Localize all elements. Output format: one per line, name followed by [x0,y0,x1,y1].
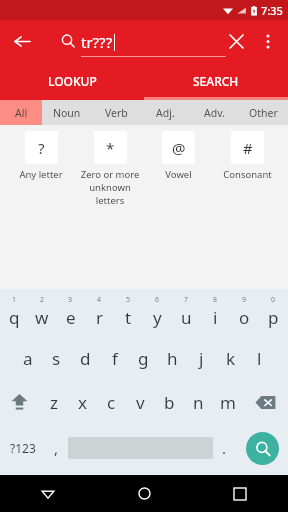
staticText: LOOKUP [48,73,97,89]
staticText: Consonant [223,168,272,181]
staticText: h [167,347,178,370]
staticText: f [112,347,118,370]
staticText: e [66,306,76,329]
staticText: Adv. [204,106,225,120]
button[interactable]: c [97,380,126,424]
button[interactable]: s [42,336,71,380]
staticText: j [199,347,204,370]
button[interactable]: More options [254,27,282,55]
staticText: 8 [213,295,218,305]
staticText: q [9,306,20,329]
staticText: i [213,306,218,329]
staticText: Zero or more unknown letters [77,168,143,207]
button[interactable]: # [214,131,280,181]
button[interactable]: b [155,380,184,424]
staticText: 1 [12,295,17,305]
staticText: , [54,438,59,458]
button[interactable]: 5 [114,294,143,336]
button[interactable]: Noun [42,100,92,125]
staticText: ? [38,138,45,158]
button[interactable]: j [187,336,216,380]
staticText: Vowel [165,168,192,181]
button[interactable]: d [71,336,100,380]
button[interactable]: Clear [222,27,250,55]
staticText: c [107,391,116,414]
staticText: p [268,306,279,329]
button[interactable]: Adj. [141,100,190,125]
button[interactable]: All [0,100,42,125]
staticText: 0 [271,295,276,305]
staticText: @ [172,138,186,158]
button[interactable]: LOOKUP [0,62,144,100]
staticText: 5 [126,295,131,305]
button[interactable]: Backspace [242,380,288,424]
staticText: Other [249,106,278,120]
staticText: d [80,347,91,370]
button[interactable]: ? [8,131,74,181]
staticText: ?123 [10,440,36,456]
button[interactable]: Back [8,27,36,55]
staticText: 9 [242,295,247,305]
button[interactable]: a [13,336,42,380]
staticText: Any letter [19,168,63,181]
staticText: y [153,306,162,329]
button[interactable]: Other [239,100,288,125]
button[interactable]: x [68,380,97,424]
button[interactable]: 1 [0,294,28,336]
staticText: b [164,391,175,414]
staticText: Noun [53,106,81,120]
button[interactable]: 2 [28,294,56,336]
button[interactable]: v [126,380,155,424]
staticText: t [125,306,132,329]
staticText: r [96,306,104,329]
staticText: s [52,347,61,370]
staticText: # [243,138,253,158]
button[interactable]: 0 [259,294,288,336]
button[interactable]: , [45,424,68,472]
staticText: z [50,391,58,414]
staticText: 2 [40,295,45,305]
button[interactable]: 3 [56,294,85,336]
button[interactable]: @ [145,131,211,181]
button[interactable]: z [39,380,68,424]
button[interactable]: * [77,131,143,207]
button[interactable]: k [216,336,245,380]
staticText: 3 [68,295,73,305]
staticText: a [23,347,33,370]
staticText: k [226,347,236,370]
staticText: o [239,306,250,329]
button[interactable]: 4 [85,294,114,336]
staticText: 6 [155,295,160,305]
button[interactable]: Search [236,424,288,472]
staticText: u [181,306,192,329]
button[interactable]: Recents [192,475,288,512]
staticText: 7:35 [261,3,283,18]
staticText: v [136,391,145,414]
staticText: Adj. [156,106,175,120]
button[interactable]: Adv. [190,100,239,125]
staticText: . [222,438,227,458]
button[interactable]: f [100,336,129,380]
staticText: 4 [97,295,102,305]
button[interactable]: Verb [92,100,141,125]
button[interactable]: m [213,380,242,424]
button[interactable]: Home [96,475,192,512]
staticText: SEARCH [193,73,239,89]
button[interactable]: 9 [230,294,259,336]
button[interactable]: Back [0,475,96,512]
button[interactable]: 6 [143,294,172,336]
button[interactable]: Shift [0,380,39,424]
staticText: w [35,306,49,329]
button[interactable]: l [245,336,274,380]
button[interactable]: . [213,424,236,472]
button[interactable]: h [158,336,187,380]
staticText: 7 [184,295,189,305]
button[interactable]: n [184,380,213,424]
button[interactable]: g [129,336,158,380]
button[interactable]: 8 [201,294,230,336]
button[interactable]: SEARCH [144,62,288,100]
button[interactable]: 7 [172,294,201,336]
button[interactable]: ?123 [0,424,45,472]
staticText: g [138,347,149,370]
